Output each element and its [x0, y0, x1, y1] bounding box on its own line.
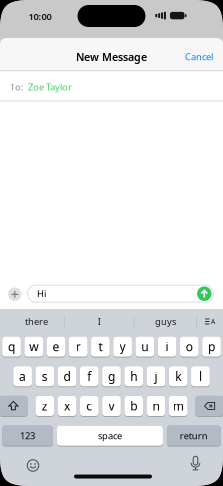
button[interactable] — [197, 286, 212, 301]
staticText: u — [141, 339, 148, 354]
button[interactable]: guys — [134, 309, 196, 336]
button[interactable]: i — [158, 336, 176, 357]
staticText: m — [173, 398, 184, 414]
button[interactable]: v — [102, 396, 121, 417]
staticText: h — [130, 368, 137, 384]
button[interactable]: I — [65, 309, 134, 336]
button[interactable]: f — [80, 366, 99, 387]
staticText: Cancel — [185, 51, 213, 63]
staticText: p — [208, 339, 215, 354]
button[interactable]: z — [35, 396, 54, 417]
button[interactable]: h — [124, 366, 143, 387]
staticText: a — [19, 368, 26, 384]
button[interactable]: p — [202, 336, 221, 357]
staticText: guys — [155, 315, 176, 328]
staticText: return — [180, 429, 208, 442]
button[interactable]: n — [147, 396, 165, 417]
button[interactable]: 123 — [2, 426, 53, 447]
staticText: r — [76, 339, 81, 354]
button[interactable]: q — [2, 336, 21, 357]
button[interactable]: y — [113, 336, 132, 357]
button[interactable]: d — [58, 366, 76, 387]
staticText: e — [52, 339, 59, 354]
staticText: j — [154, 368, 157, 384]
staticText: n — [152, 398, 159, 414]
button[interactable]: Hi — [27, 285, 213, 302]
staticText: 123 — [20, 429, 35, 442]
staticText: Hi — [37, 287, 46, 300]
button[interactable]: Cancel — [185, 51, 213, 63]
staticText: q — [8, 339, 15, 354]
button[interactable]: s — [35, 366, 54, 387]
button[interactable]: t — [91, 336, 110, 357]
staticText: l — [199, 368, 202, 384]
staticText: t — [98, 339, 102, 354]
staticText: I — [98, 315, 101, 328]
button[interactable]: b — [124, 396, 143, 417]
staticText: z — [42, 398, 48, 414]
button[interactable]: space — [57, 426, 163, 447]
button[interactable]: A — [197, 309, 223, 336]
button[interactable]: g — [102, 366, 121, 387]
button[interactable]: u — [135, 336, 154, 357]
staticText: o — [186, 339, 193, 354]
button[interactable]: To: — [0, 71, 223, 101]
button[interactable] — [195, 396, 223, 417]
button[interactable]: j — [147, 366, 165, 387]
button[interactable]: c — [80, 396, 99, 417]
staticText: g — [108, 368, 115, 384]
staticText: f — [87, 368, 91, 384]
staticText: v — [108, 398, 114, 414]
staticText: c — [86, 398, 92, 414]
staticText: k — [175, 368, 181, 384]
staticText: i — [166, 339, 169, 354]
staticText: New Message — [76, 50, 147, 64]
button[interactable]: o — [180, 336, 199, 357]
staticText: there — [25, 315, 48, 328]
button[interactable]: l — [191, 366, 210, 387]
button[interactable]: k — [169, 366, 187, 387]
button[interactable]: x — [58, 396, 76, 417]
button[interactable] — [0, 396, 27, 417]
button[interactable]: e — [47, 336, 65, 357]
button[interactable] — [8, 288, 22, 301]
staticText: Zoe Taylor — [28, 81, 72, 93]
staticText: x — [64, 398, 70, 414]
button[interactable]: a — [13, 366, 32, 387]
staticText: 10:00 — [28, 10, 51, 23]
staticText: space — [98, 429, 122, 442]
button[interactable] — [27, 460, 39, 471]
staticText: To: — [10, 81, 24, 93]
button[interactable]: r — [69, 336, 87, 357]
staticText: s — [42, 368, 48, 384]
button[interactable]: return — [167, 426, 221, 447]
button[interactable] — [190, 456, 200, 471]
button[interactable]: w — [24, 336, 43, 357]
staticText: y — [120, 339, 126, 354]
staticText: w — [29, 339, 38, 354]
button[interactable]: there — [0, 309, 64, 336]
button[interactable]: m — [169, 396, 187, 417]
staticText: d — [64, 368, 71, 384]
staticText: b — [130, 398, 137, 414]
staticText: A — [211, 317, 215, 326]
